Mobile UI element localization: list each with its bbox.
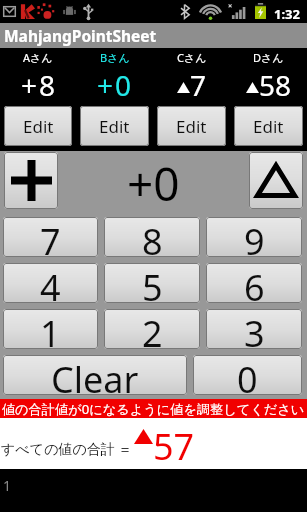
- staticText: Dさん: [253, 50, 284, 65]
- staticText: Edit: [99, 115, 130, 138]
- button[interactable]: 5: [104, 263, 200, 303]
- staticText: MahjangPointSheet: [4, 25, 157, 46]
- staticText: 0: [115, 66, 132, 104]
- button[interactable]: Edit: [80, 106, 149, 146]
- staticText: 8: [39, 66, 56, 104]
- other: Mail: [3, 6, 16, 17]
- other: Wi-Fi: [200, 4, 221, 20]
- staticText: +0: [127, 152, 180, 209]
- staticText: +: [97, 66, 114, 104]
- staticText: 7: [190, 66, 207, 104]
- button[interactable]: 8: [104, 217, 200, 257]
- staticText: 1: [40, 309, 61, 349]
- other: Security app: [20, 3, 35, 20]
- button[interactable]: 1: [3, 309, 98, 349]
- staticText: すべての値の合計 ＝: [1, 439, 133, 458]
- button[interactable]: Clear: [3, 355, 187, 395]
- staticText: 1: [3, 476, 12, 495]
- other: Bluetooth: [180, 4, 190, 19]
- button[interactable]: 2: [104, 309, 200, 349]
- staticText: Cさん: [177, 50, 207, 65]
- button[interactable]: Edit: [157, 106, 226, 146]
- staticText: Edit: [253, 115, 284, 138]
- staticText: 4: [40, 263, 61, 303]
- staticText: 58: [259, 66, 292, 104]
- staticText: Edit: [176, 115, 207, 138]
- staticText: 7: [40, 217, 61, 257]
- staticText: 3: [244, 309, 265, 349]
- button[interactable]: 9: [206, 217, 302, 257]
- button[interactable]: 3: [206, 309, 302, 349]
- staticText: +: [21, 66, 38, 104]
- button[interactable]: Edit: [234, 106, 303, 146]
- staticText: 2: [142, 309, 163, 349]
- other: USB connected: [83, 3, 94, 20]
- button[interactable]: Plus: [4, 152, 58, 209]
- staticText: 5: [142, 263, 163, 303]
- other: Mobile signal: [228, 4, 243, 19]
- button[interactable]: 4: [3, 263, 98, 303]
- staticText: Bさん: [100, 50, 130, 65]
- other: USB debugging: [63, 5, 76, 18]
- button[interactable]: 0: [193, 355, 302, 395]
- button[interactable]: Minus: [249, 152, 303, 209]
- staticText: Aさん: [23, 50, 53, 65]
- button[interactable]: 6: [206, 263, 302, 303]
- staticText: 57: [153, 422, 195, 469]
- staticText: Edit: [23, 115, 54, 138]
- staticText: 値の合計値が0になるように値を調整してください: [2, 400, 305, 418]
- staticText: 9: [244, 217, 265, 257]
- staticText: 0: [237, 355, 258, 395]
- button[interactable]: 7: [3, 217, 98, 257]
- other: Battery: [255, 3, 266, 19]
- staticText: 8: [142, 217, 163, 257]
- button[interactable]: Edit: [4, 106, 72, 146]
- staticText: 6: [244, 263, 265, 303]
- staticText: Clear: [51, 355, 139, 395]
- other: Notifications: [37, 3, 55, 20]
- staticText: 1:32: [274, 5, 300, 23]
